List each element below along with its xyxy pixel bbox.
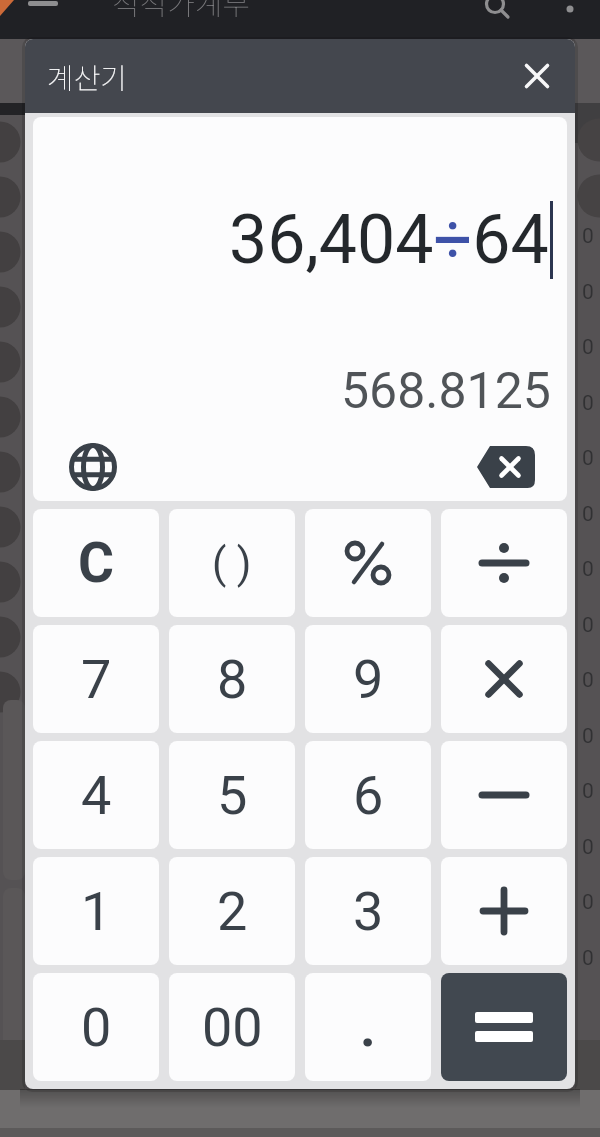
button[interactable] <box>441 625 567 733</box>
button[interactable]: 5 <box>169 741 295 849</box>
button[interactable] <box>63 437 123 497</box>
button[interactable] <box>305 509 431 617</box>
staticText: 0 <box>582 391 594 416</box>
staticText: 4 <box>81 764 112 827</box>
staticText: 0 <box>582 335 594 360</box>
button[interactable]: 2 <box>169 857 295 965</box>
button[interactable] <box>513 52 561 100</box>
staticText: 계산기 <box>47 55 128 97</box>
staticText: 7 <box>81 648 112 711</box>
button[interactable]: 7 <box>33 625 159 733</box>
staticText: 0 <box>582 613 594 638</box>
button[interactable]: . <box>305 973 431 1081</box>
staticText: 5 <box>217 764 248 827</box>
staticText: 0 <box>582 890 594 915</box>
button[interactable]: 8 <box>169 625 295 733</box>
button[interactable]: C <box>33 509 159 617</box>
button[interactable]: 1 <box>33 857 159 965</box>
staticText: 36,404÷64 <box>229 200 549 280</box>
staticText: 8 <box>217 648 248 711</box>
button[interactable]: 4 <box>33 741 159 849</box>
staticText: 0 <box>582 446 594 471</box>
staticText: 0 <box>582 668 594 693</box>
button[interactable] <box>441 973 567 1081</box>
staticText: 0 <box>582 280 594 305</box>
staticText: C <box>78 531 115 595</box>
button[interactable]: 3 <box>305 857 431 965</box>
staticText: 0 <box>81 996 112 1059</box>
staticText: 9 <box>353 648 384 711</box>
staticText: 0 <box>582 779 594 804</box>
staticText: 568.8125 <box>341 362 551 421</box>
staticText: 1 <box>81 880 112 943</box>
button[interactable]: 00 <box>169 973 295 1081</box>
staticText: 0 <box>582 946 594 971</box>
button[interactable]: 6 <box>305 741 431 849</box>
button[interactable]: ( ) <box>169 509 295 617</box>
button[interactable]: 0 <box>33 973 159 1081</box>
staticText: . <box>360 996 376 1059</box>
button[interactable] <box>471 437 541 497</box>
staticText: 2 <box>217 880 248 943</box>
staticText: 3 <box>353 880 384 943</box>
staticText: 0 <box>582 724 594 749</box>
staticText: 0 <box>582 557 594 582</box>
staticText: 0 <box>582 835 594 860</box>
button[interactable]: 9 <box>305 625 431 733</box>
button[interactable] <box>441 741 567 849</box>
button[interactable] <box>441 509 567 617</box>
staticText: 00 <box>202 996 263 1059</box>
staticText: 6 <box>353 764 384 827</box>
staticText: 0 <box>582 502 594 527</box>
staticText: 0 <box>582 224 594 249</box>
staticText: 적적가계부 <box>112 0 250 23</box>
button[interactable] <box>441 857 567 965</box>
staticText: ( ) <box>212 539 252 588</box>
